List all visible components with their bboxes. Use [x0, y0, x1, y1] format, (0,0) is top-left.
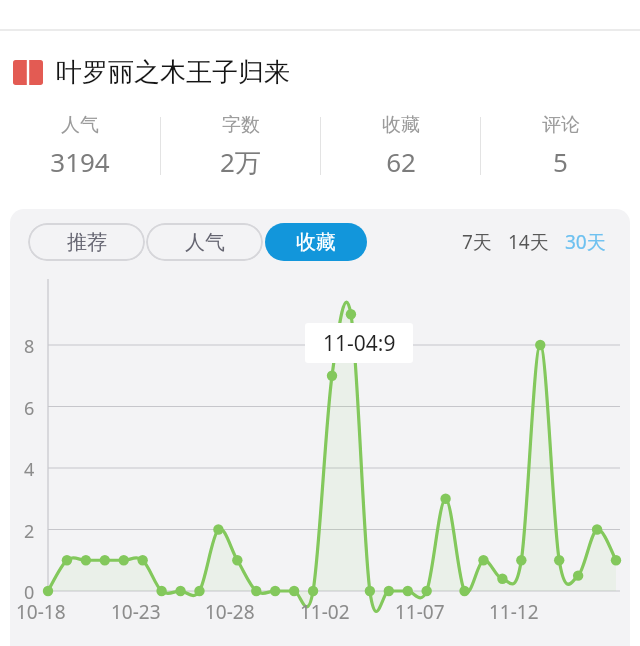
- staticText: 14天: [508, 229, 549, 255]
- staticText: 推荐: [67, 230, 107, 255]
- staticText: 0: [24, 580, 35, 605]
- staticText: 3194: [50, 144, 110, 179]
- staticText: 8: [24, 334, 35, 359]
- button[interactable]: 字数: [161, 108, 320, 184]
- staticText: 2万: [220, 144, 261, 180]
- staticText: 4: [24, 457, 35, 482]
- button[interactable]: 推荐: [28, 223, 145, 261]
- button[interactable]: 人气: [0, 108, 160, 184]
- button[interactable]: 30天: [563, 224, 608, 260]
- button[interactable]: 收藏: [321, 108, 480, 184]
- staticText: 30天: [565, 229, 606, 255]
- staticText: 10-18: [16, 599, 66, 625]
- staticText: 收藏: [382, 113, 420, 137]
- staticText: 11-04:9: [323, 329, 396, 358]
- staticText: 人气: [61, 113, 99, 137]
- button[interactable]: 评论: [481, 108, 640, 184]
- button[interactable]: Book: [13, 51, 640, 93]
- staticText: 62: [386, 144, 416, 179]
- staticText: 10-23: [111, 599, 161, 625]
- other: Book: [13, 60, 43, 85]
- staticText: 评论: [542, 113, 580, 137]
- staticText: 11-12: [489, 599, 539, 625]
- staticText: 字数: [222, 113, 260, 137]
- staticText: 收藏: [296, 230, 336, 255]
- button[interactable]: 收藏: [265, 223, 367, 261]
- button[interactable]: 14天: [506, 224, 551, 260]
- staticText: 11-02: [300, 599, 350, 625]
- staticText: 6: [24, 396, 35, 421]
- staticText: 叶罗丽之木王子归来: [56, 56, 290, 89]
- staticText: 5: [553, 144, 568, 179]
- button[interactable]: 人气: [146, 223, 263, 261]
- staticText: 人气: [185, 230, 225, 255]
- staticText: 10-28: [205, 599, 255, 625]
- staticText: 2: [24, 519, 35, 544]
- staticText: 11-07: [395, 599, 445, 625]
- staticText: 7天: [462, 229, 492, 255]
- button[interactable]: 7天: [460, 224, 494, 260]
